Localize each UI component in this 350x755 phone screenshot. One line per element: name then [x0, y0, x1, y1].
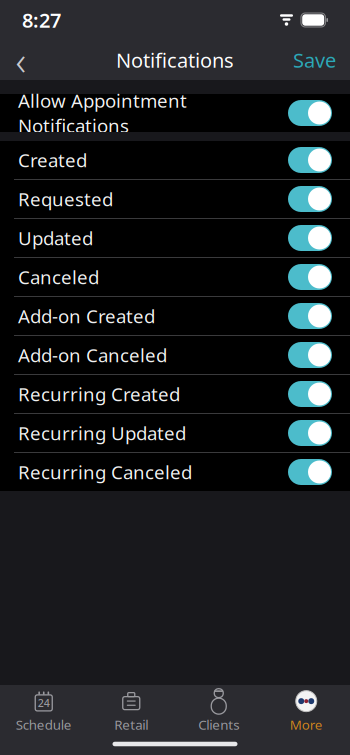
- button[interactable]: Toggle: [288, 303, 332, 329]
- staticText: Save: [293, 47, 336, 73]
- button[interactable]: Requested: [0, 180, 350, 218]
- button[interactable]: Recurring Created: [0, 375, 350, 413]
- staticText: Clients: [198, 716, 239, 733]
- button[interactable]: Toggle: [288, 100, 332, 126]
- button[interactable]: Allow Appointment Notifications: [0, 94, 350, 132]
- button[interactable]: Toggle: [288, 264, 332, 290]
- button[interactable]: Save: [279, 40, 350, 80]
- button[interactable]: Clients: [175, 685, 262, 733]
- button[interactable]: Back: [0, 40, 42, 80]
- button[interactable]: Toggle: [288, 459, 332, 485]
- button[interactable]: Add-on Canceled: [0, 336, 350, 374]
- button[interactable]: Add-on Created: [0, 297, 350, 335]
- button[interactable]: Retail: [87, 685, 175, 733]
- staticText: Canceled: [18, 265, 99, 289]
- button[interactable]: Recurring Updated: [0, 414, 350, 452]
- button[interactable]: Toggle: [288, 420, 332, 446]
- staticText: Recurring Canceled: [18, 460, 192, 484]
- button[interactable]: Toggle: [288, 147, 332, 173]
- button[interactable]: More: [262, 685, 350, 733]
- button[interactable]: Recurring Canceled: [0, 453, 350, 491]
- button[interactable]: Canceled: [0, 258, 350, 296]
- staticText: ‹: [15, 33, 26, 86]
- staticText: Updated: [18, 226, 93, 250]
- staticText: Add-on Canceled: [18, 343, 167, 367]
- staticText: Recurring Created: [18, 382, 180, 406]
- staticText: Notifications: [116, 47, 234, 73]
- button[interactable]: Created: [0, 141, 350, 179]
- staticText: Recurring Updated: [18, 421, 186, 445]
- staticText: Allow Appointment Notifications: [18, 88, 187, 138]
- staticText: Created: [18, 148, 87, 172]
- button[interactable]: Updated: [0, 219, 350, 257]
- button[interactable]: Toggle: [288, 381, 332, 407]
- button[interactable]: Toggle: [288, 225, 332, 251]
- button[interactable]: 24: [0, 685, 87, 733]
- button[interactable]: Toggle: [288, 342, 332, 368]
- button[interactable]: Toggle: [288, 186, 332, 212]
- staticText: More: [290, 716, 323, 733]
- staticText: Add-on Created: [18, 304, 155, 328]
- staticText: Retail: [114, 716, 148, 733]
- staticText: Schedule: [16, 716, 72, 733]
- staticText: Requested: [18, 187, 113, 211]
- staticText: 8:27: [22, 7, 61, 33]
- staticText: 24: [38, 696, 50, 710]
